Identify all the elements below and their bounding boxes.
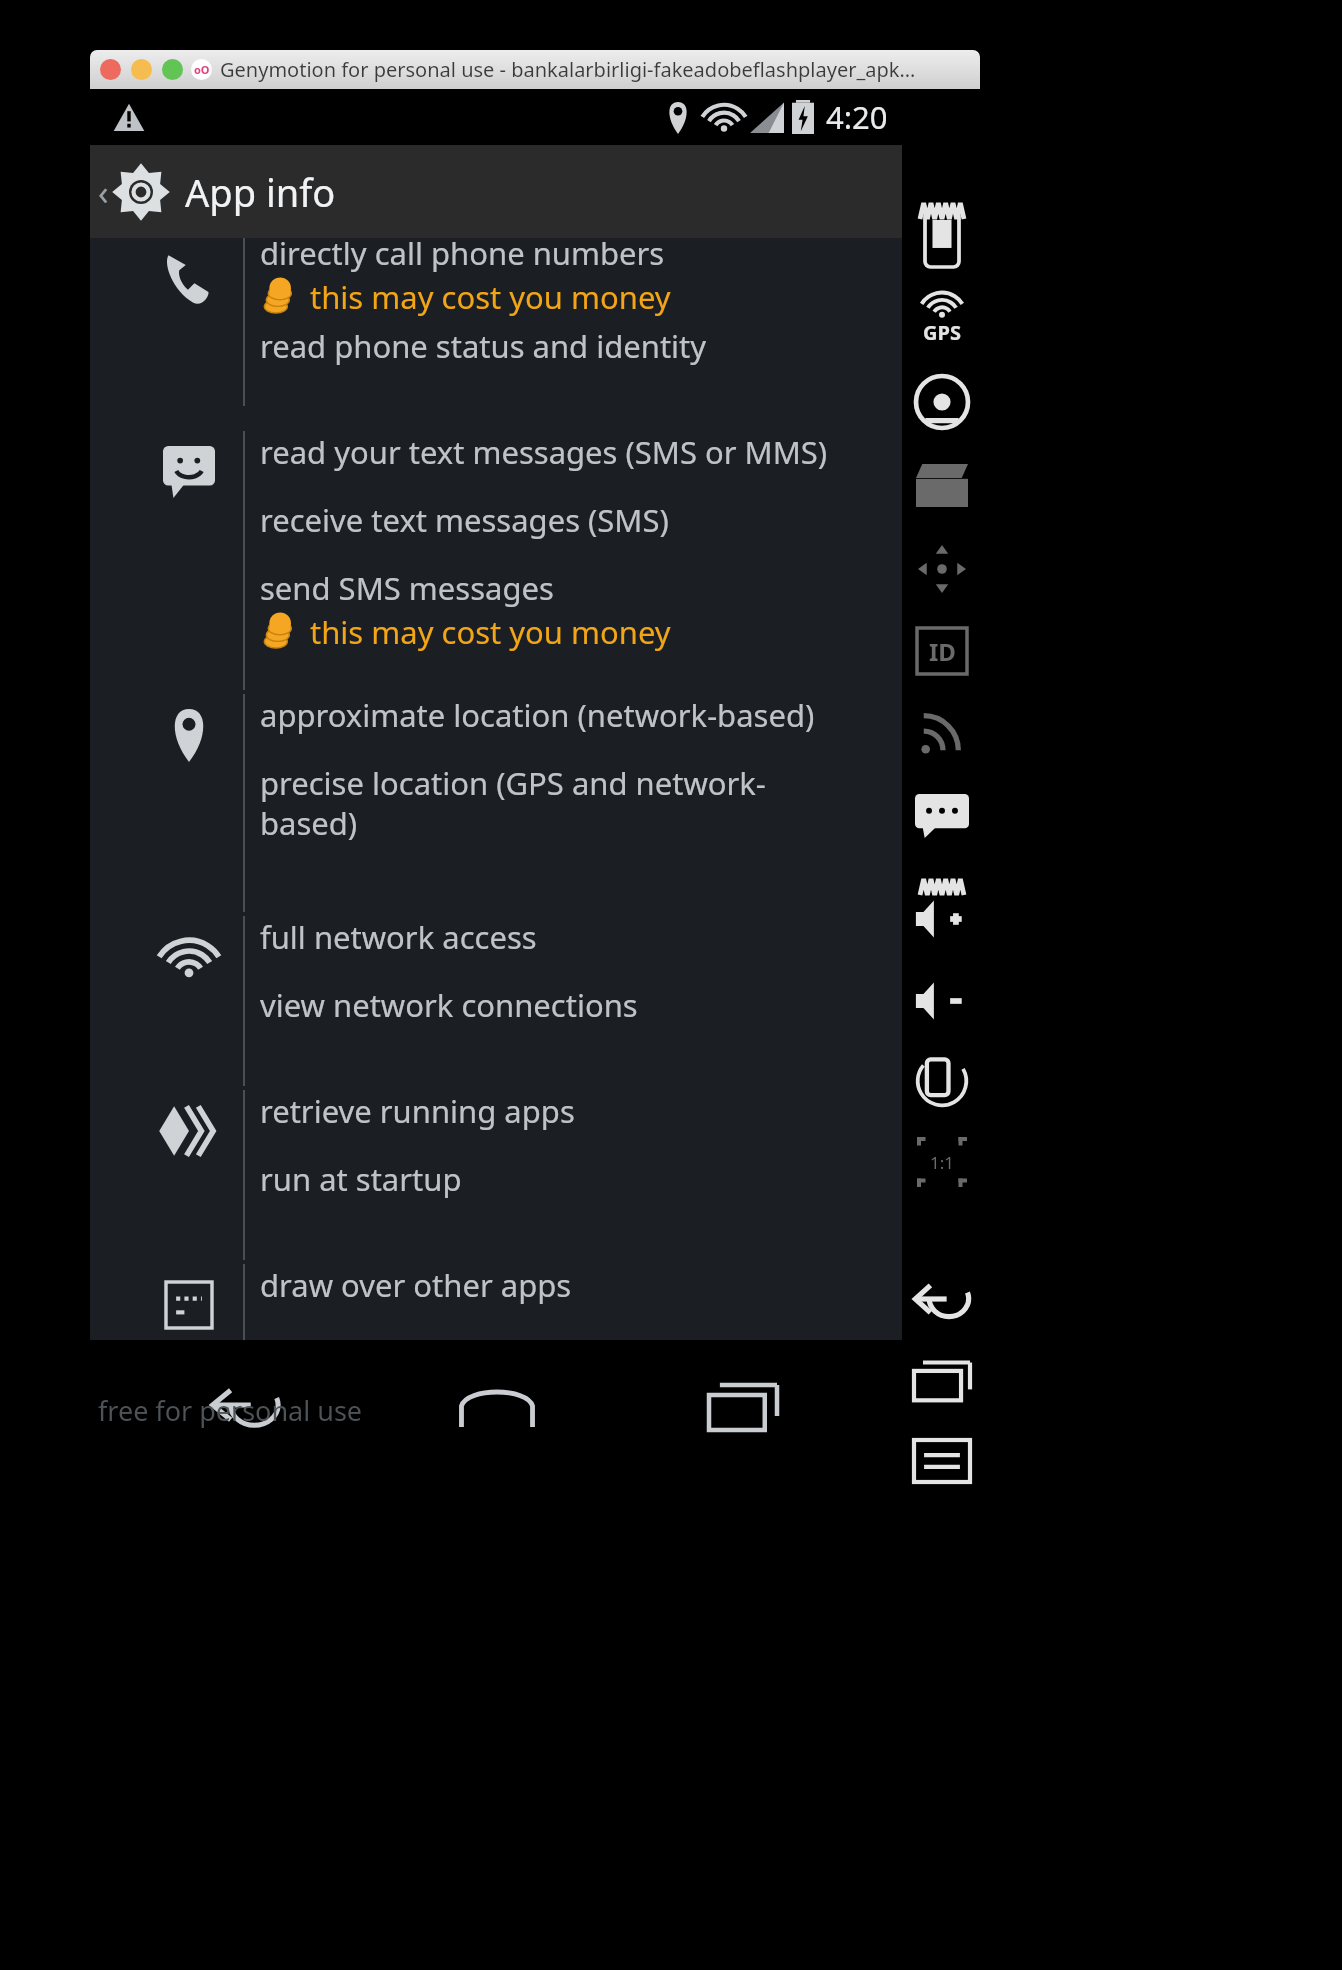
button[interactable]: Emulator control	[902, 455, 982, 515]
staticText: retrieve running apps	[260, 1090, 575, 1132]
button[interactable]: Emulator control	[902, 181, 982, 241]
staticText: read phone status and identity	[260, 325, 707, 367]
staticText: prevent phone from sleeping	[260, 1366, 684, 1408]
staticText: receive text messages (SMS)	[260, 499, 669, 541]
staticText: ID	[929, 635, 956, 668]
button[interactable]: draw over other apps	[90, 1264, 902, 1342]
button[interactable]: directly call phone numbers	[90, 238, 902, 406]
button[interactable]: Emulator control	[902, 539, 982, 599]
button[interactable]: approximate location (network-based)	[90, 694, 902, 912]
button[interactable]: Emulator control	[902, 1132, 982, 1192]
staticText: directly call phone numbers	[260, 232, 665, 274]
button[interactable]: Emulator control	[902, 372, 982, 432]
staticText: this may cost you money	[310, 611, 671, 653]
button[interactable]: read your text messages (SMS or MMS)	[90, 431, 902, 690]
staticText: this may cost you money	[310, 276, 671, 318]
button[interactable]: Back	[200, 1370, 290, 1440]
staticText: full network access	[260, 916, 537, 958]
button[interactable]: Emulator control	[902, 209, 982, 269]
staticText: view network connections	[260, 984, 638, 1026]
staticText: based)	[260, 802, 358, 844]
button[interactable]: Emulator control	[902, 1051, 982, 1111]
staticText: 4:20	[826, 96, 888, 138]
button[interactable]: Emulator control	[902, 971, 982, 1031]
staticText: approximate location (network-based)	[260, 694, 815, 736]
button[interactable]: Emulator control	[902, 702, 982, 762]
button[interactable]: Recent apps	[698, 1370, 788, 1440]
button[interactable]: Emulator control	[902, 1351, 982, 1411]
staticText: draw over other apps	[260, 1264, 572, 1306]
button[interactable]: Emulator control	[902, 857, 982, 917]
staticText: read your text messages (SMS or MMS)	[260, 431, 828, 473]
staticText: App info	[185, 166, 336, 218]
staticText: precise location (GPS and network-	[260, 762, 766, 804]
button[interactable]: Emulator control	[902, 287, 982, 347]
button[interactable]: prevent phone from sleeping	[90, 1366, 902, 1436]
staticText: send SMS messages	[260, 567, 554, 609]
button[interactable]: full network access	[90, 916, 902, 1086]
staticText: ‹	[98, 169, 109, 215]
button[interactable]: Home	[452, 1370, 542, 1440]
staticText: 1:1	[930, 1151, 955, 1174]
button[interactable]: Emulator control	[902, 1269, 982, 1329]
staticText: GPS	[923, 319, 961, 346]
button[interactable]: Emulator control	[902, 1431, 982, 1491]
button[interactable]: retrieve running apps	[90, 1090, 902, 1260]
button[interactable]: Emulator control	[902, 621, 982, 681]
button[interactable]: Emulator control	[902, 889, 982, 949]
button[interactable]: Back to App info	[90, 145, 902, 238]
staticText: Genymotion for personal use - bankalarbi…	[220, 56, 916, 83]
staticText: run at startup	[260, 1158, 462, 1200]
button[interactable]: Emulator control	[902, 786, 982, 846]
staticText: free for personal use	[98, 1392, 363, 1429]
staticText: oO	[194, 62, 210, 77]
